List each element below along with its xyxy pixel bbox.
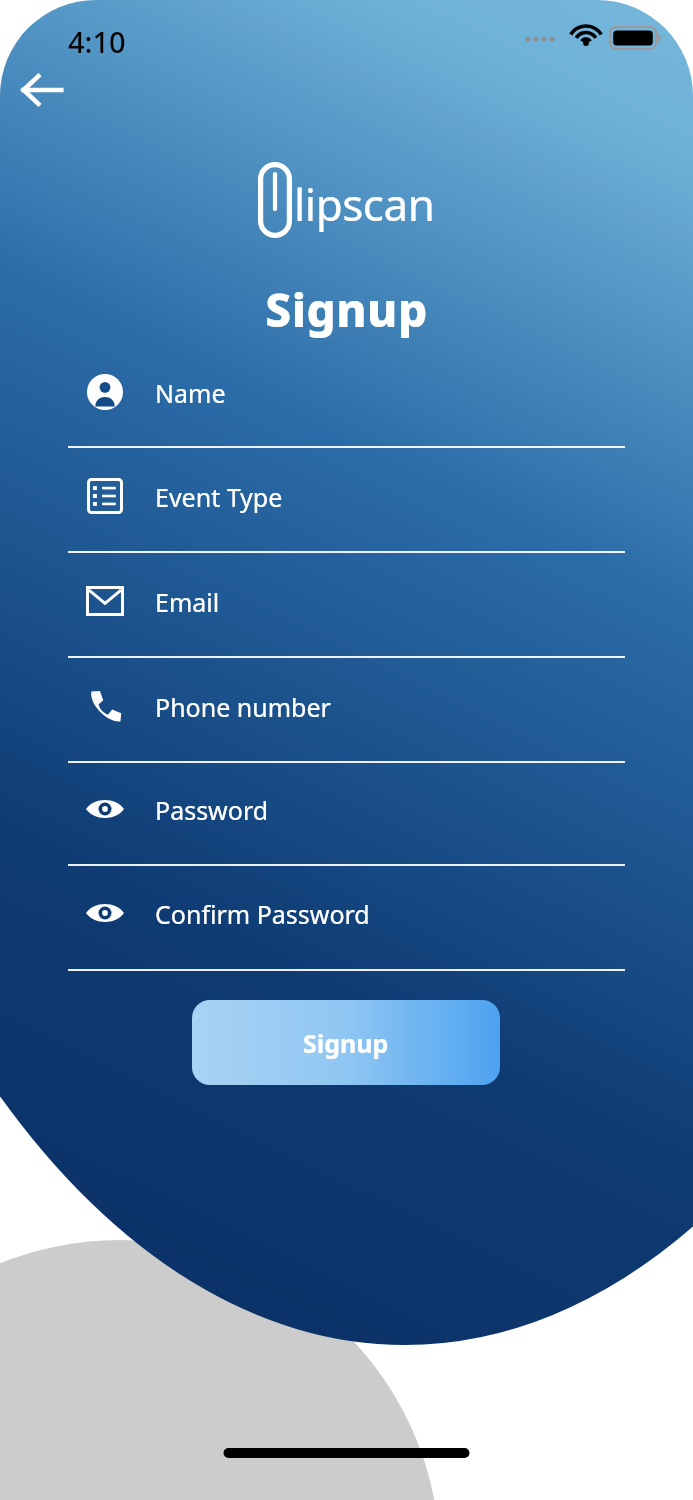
button[interactable]: Confirm Password: [68, 887, 625, 971]
button[interactable]: Back: [14, 62, 70, 118]
staticText: Signup: [265, 278, 428, 341]
staticText: Signup: [303, 1026, 389, 1060]
button[interactable]: Name: [68, 366, 625, 448]
staticText: Confirm Password: [155, 897, 370, 931]
button[interactable]: Password: [68, 783, 625, 866]
staticText: Name: [155, 376, 226, 410]
button[interactable]: Signup: [192, 1000, 500, 1085]
button[interactable]: Phone number: [68, 680, 625, 763]
staticText: Phone number: [155, 690, 331, 724]
button[interactable]: Email: [68, 575, 625, 658]
staticText: 4:10: [68, 22, 126, 61]
staticText: Password: [155, 793, 269, 827]
staticText: Event Type: [155, 480, 283, 514]
staticText: Email: [155, 585, 220, 619]
staticText: lipscan: [294, 174, 435, 234]
button[interactable]: Event Type: [68, 470, 625, 553]
